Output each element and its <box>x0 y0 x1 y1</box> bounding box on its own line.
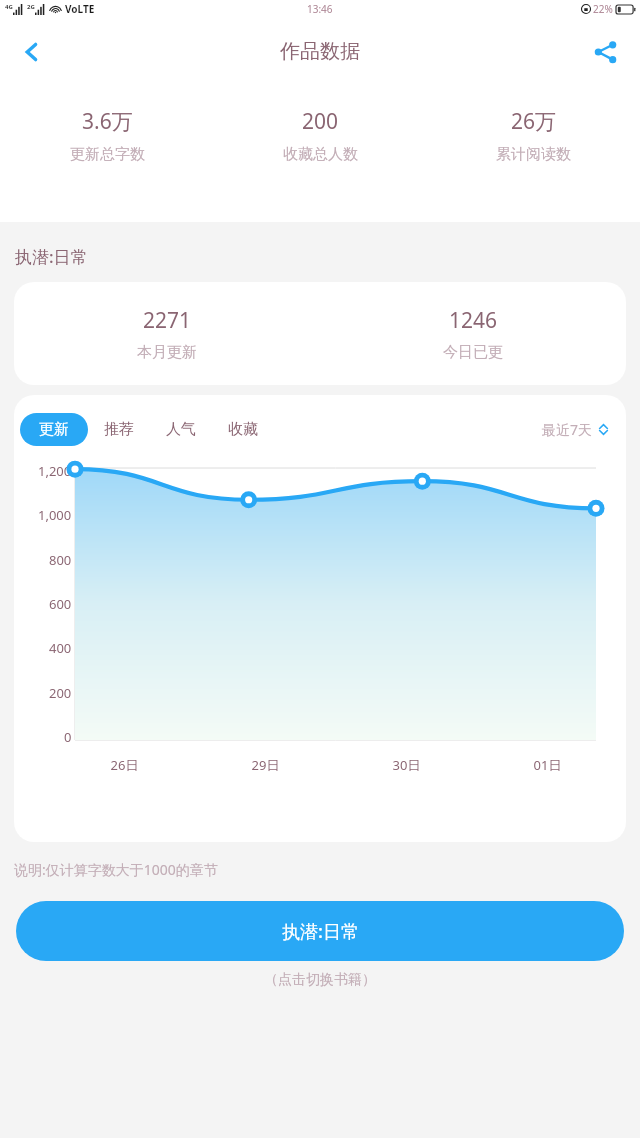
button[interactable]: 200 <box>214 107 427 164</box>
button[interactable]: 推荐 <box>88 413 150 446</box>
staticText: 收藏 <box>228 420 258 439</box>
staticText: VoLTE <box>65 2 95 16</box>
button[interactable]: 执潜:日常 <box>16 901 624 961</box>
staticText: 13:46 <box>307 2 333 16</box>
staticText: 3.6万 <box>82 107 133 136</box>
staticText: 执潜:日常 <box>282 919 359 944</box>
staticText: 30日 <box>336 756 477 774</box>
button[interactable]: 人气 <box>150 413 212 446</box>
staticText: 执潜:日常 <box>15 245 88 268</box>
button[interactable]: 3.6万 <box>0 107 214 164</box>
staticText: 26日 <box>54 756 195 774</box>
staticText: 600 <box>49 595 72 613</box>
staticText: 2271 <box>143 306 192 335</box>
staticText: （点击切换书籍） <box>0 971 640 989</box>
staticText: 400 <box>49 639 72 657</box>
staticText: 作品数据 <box>280 39 360 64</box>
staticText: 收藏总人数 <box>283 145 358 164</box>
staticText: 4G <box>5 3 13 11</box>
button[interactable]: 更新 <box>20 413 88 446</box>
staticText: 人气 <box>166 420 196 439</box>
staticText: 200 <box>49 684 72 702</box>
button[interactable]: 最近7天 <box>538 416 614 443</box>
staticText: 800 <box>49 551 72 569</box>
staticText: 累计阅读数 <box>496 145 571 164</box>
staticText: 推荐 <box>104 420 134 439</box>
staticText: 1,200 <box>38 462 72 480</box>
staticText: 200 <box>302 107 339 136</box>
button[interactable]: Back <box>8 28 56 76</box>
staticText: 22% <box>593 2 613 16</box>
button[interactable]: Share <box>582 28 630 76</box>
staticText: 更新 <box>39 420 69 439</box>
staticText: 26万 <box>511 107 557 136</box>
staticText: 今日已更 <box>443 343 503 362</box>
staticText: 说明:仅计算字数大于1000的章节 <box>14 860 218 879</box>
button[interactable]: 26万 <box>427 107 640 164</box>
staticText: 29日 <box>195 756 336 774</box>
staticText: 1246 <box>449 306 498 335</box>
staticText: 更新总字数 <box>70 145 145 164</box>
staticText: 0 <box>64 728 72 746</box>
staticText: 最近7天 <box>542 420 593 439</box>
staticText: 本月更新 <box>137 343 197 362</box>
staticText: 01日 <box>477 756 618 774</box>
staticText: 2G <box>27 3 35 11</box>
staticText: 1,000 <box>38 506 72 524</box>
button[interactable]: 2271 <box>14 282 626 385</box>
button[interactable]: 收藏 <box>212 413 274 446</box>
